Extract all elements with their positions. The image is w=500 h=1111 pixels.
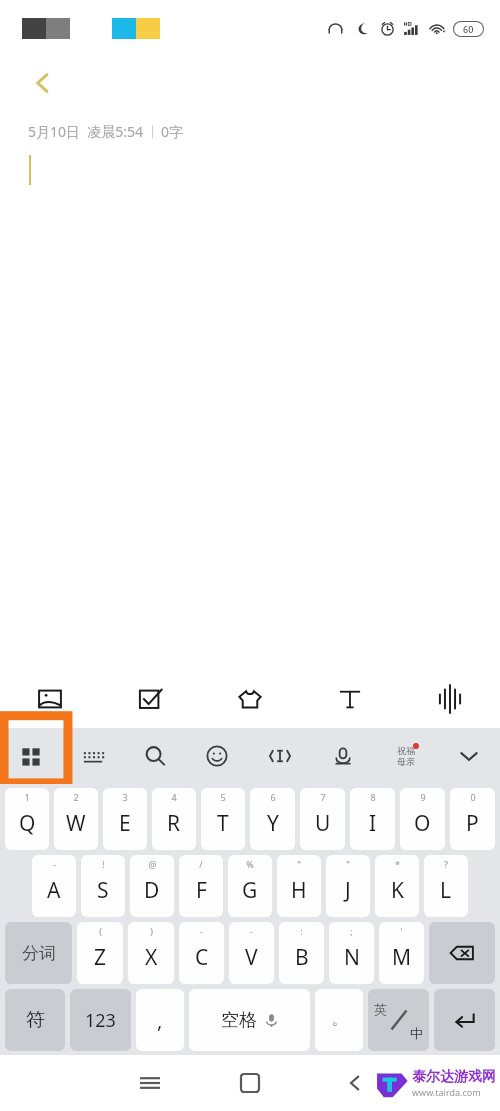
staticText: R [167, 809, 181, 838]
staticText: Z [94, 943, 107, 972]
button[interactable]: * [375, 855, 419, 917]
button[interactable]: Back [331, 1059, 379, 1107]
button[interactable]: 符 [5, 989, 65, 1051]
staticText: 。 [332, 1011, 346, 1029]
button[interactable]: 英 [368, 989, 429, 1051]
button[interactable]: 0 [450, 788, 495, 850]
button[interactable]: Insert image [0, 670, 100, 728]
button[interactable]: 空格 [189, 989, 310, 1051]
button[interactable]: / [179, 855, 223, 917]
button[interactable]: Text format [300, 670, 400, 728]
button[interactable]: 9 [400, 788, 445, 850]
staticText: 5 [220, 791, 226, 803]
button[interactable]: - [179, 922, 224, 984]
button[interactable]: ' [379, 922, 424, 984]
staticText: 符 [26, 1008, 45, 1032]
button[interactable]: 1 [5, 788, 49, 850]
button[interactable] [429, 922, 495, 984]
button[interactable] [434, 989, 495, 1051]
staticText: Q [19, 809, 36, 838]
staticText: www.tairda.com [412, 1086, 481, 1098]
button[interactable]: ? [424, 855, 468, 917]
button[interactable]: Checklist [100, 670, 200, 728]
button[interactable]: Back [18, 58, 68, 108]
button[interactable]: 3 [103, 788, 147, 850]
button[interactable]: 分词 [5, 922, 72, 984]
button[interactable]: " [326, 855, 370, 917]
button[interactable]: ( [77, 922, 123, 984]
button[interactable]: Style [200, 670, 300, 728]
button[interactable]: Apps [0, 728, 62, 784]
button[interactable]: Voice input [311, 728, 374, 784]
button[interactable]: 123 [70, 989, 131, 1051]
staticText: * [395, 858, 400, 870]
button[interactable]: , [136, 989, 184, 1051]
button[interactable]: 5 [201, 788, 245, 850]
button[interactable]: - [229, 922, 274, 984]
button[interactable]: 2 [54, 788, 98, 850]
staticText: @ [148, 858, 157, 870]
staticText: T [217, 809, 229, 838]
staticText: 英 [374, 1001, 387, 1017]
button[interactable]: ! [81, 855, 125, 917]
button[interactable]: Search [124, 728, 186, 784]
staticText: F [196, 876, 207, 905]
staticText: 5月10日 凌晨5:54 [28, 122, 144, 141]
staticText: 9 [420, 791, 426, 803]
staticText: 7 [320, 791, 326, 803]
staticText: 1 [24, 791, 30, 803]
button[interactable]: ; [329, 922, 374, 984]
button[interactable]: Recent apps [126, 1059, 174, 1107]
button[interactable]: ) [128, 922, 174, 984]
button[interactable]: Hide keyboard [437, 728, 500, 784]
staticText: 空格 [221, 1009, 257, 1032]
staticText: U [315, 809, 331, 838]
staticText: 中 [410, 1025, 423, 1041]
button[interactable]: Keyboard layout [62, 728, 124, 784]
button[interactable]: : [279, 922, 324, 984]
staticText: , [157, 1007, 163, 1034]
button[interactable]: - [32, 855, 76, 917]
button[interactable]: @ [130, 855, 174, 917]
button[interactable]: Text edit [248, 728, 311, 784]
staticText: K [391, 876, 404, 905]
staticText: ( [99, 925, 102, 937]
staticText: - [200, 925, 203, 937]
staticText: 祝福 [397, 745, 415, 756]
staticText: O [414, 809, 431, 838]
staticText: - [250, 925, 253, 937]
button[interactable]: 6 [250, 788, 295, 850]
button[interactable]: % [228, 855, 272, 917]
staticText: L [440, 876, 452, 905]
staticText: 60 [463, 23, 474, 35]
staticText: 泰尔达游戏网 [412, 1068, 496, 1086]
staticText: M [392, 943, 412, 972]
staticText: 母亲 [397, 756, 415, 767]
staticText: % [246, 858, 254, 870]
button[interactable]: 祝福 [374, 728, 437, 784]
staticText: 0 [470, 791, 476, 803]
button[interactable]: 。 [315, 989, 363, 1051]
button[interactable]: Voice [400, 670, 500, 728]
staticText: B [295, 943, 309, 972]
staticText: 2 [73, 791, 79, 803]
staticText: 0字 [161, 122, 184, 141]
staticText: ? [444, 858, 448, 870]
staticText: W [66, 809, 86, 838]
staticText: " [297, 858, 301, 870]
button[interactable]: Home [226, 1059, 274, 1107]
button[interactable]: 7 [300, 788, 345, 850]
staticText: P [466, 809, 479, 838]
button[interactable]: 4 [152, 788, 196, 850]
staticText: C [195, 943, 209, 972]
staticText: : [300, 925, 303, 937]
staticText: 123 [85, 1008, 116, 1033]
staticText: X [145, 943, 158, 972]
staticText: D [144, 876, 160, 905]
button[interactable]: " [277, 855, 321, 917]
staticText: N [344, 943, 360, 972]
button[interactable]: Emoji [186, 728, 248, 784]
staticText: ! [102, 858, 105, 870]
button[interactable]: 8 [350, 788, 395, 850]
staticText: 6 [270, 791, 276, 803]
